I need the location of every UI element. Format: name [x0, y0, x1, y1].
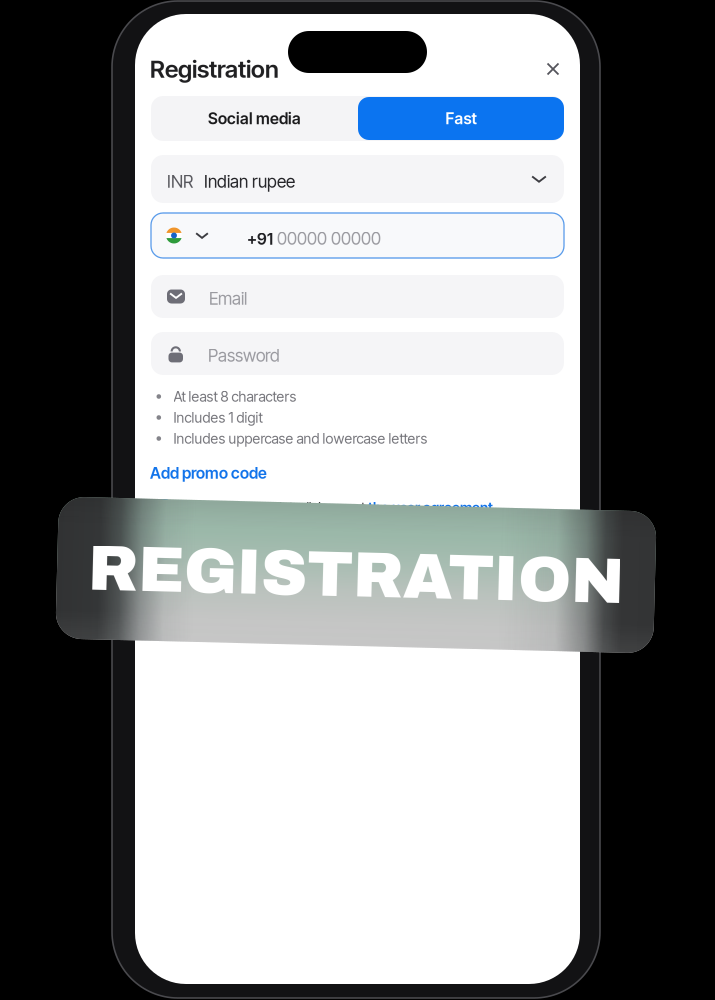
- staticText: +91: [247, 229, 273, 249]
- button[interactable]: Social media: [151, 96, 358, 141]
- button[interactable]: +91: [151, 213, 564, 258]
- staticText: Social media: [208, 109, 301, 128]
- staticText: INR: [167, 171, 193, 192]
- button[interactable]: the user agreement: [368, 499, 493, 516]
- button[interactable]: Password: [151, 332, 564, 375]
- button[interactable]: Email: [151, 275, 564, 318]
- staticText: REGISTRATION: [88, 540, 624, 610]
- staticText: Indian rupee: [204, 171, 295, 192]
- staticText: Includes 1 digit: [174, 409, 263, 426]
- button[interactable]: Add promo code: [150, 462, 267, 484]
- staticText: By clicking "Register", I accept: [181, 499, 368, 516]
- staticText: Add promo code: [150, 463, 267, 482]
- staticText: Fast: [445, 109, 476, 128]
- staticText: At least 8 characters: [174, 388, 297, 405]
- button[interactable]: Accept the user agreement: [151, 499, 171, 519]
- button[interactable]: Close: [536, 52, 570, 86]
- button[interactable]: INR: [151, 155, 564, 203]
- staticText: Password: [208, 345, 280, 366]
- staticText: Email: [209, 288, 247, 309]
- button[interactable]: Fast: [358, 97, 564, 140]
- staticText: the user agreement: [368, 499, 493, 516]
- staticText: Includes uppercase and lowercase letters: [174, 430, 428, 447]
- staticText: Registration: [150, 54, 279, 83]
- staticText: 00000 00000: [273, 228, 381, 249]
